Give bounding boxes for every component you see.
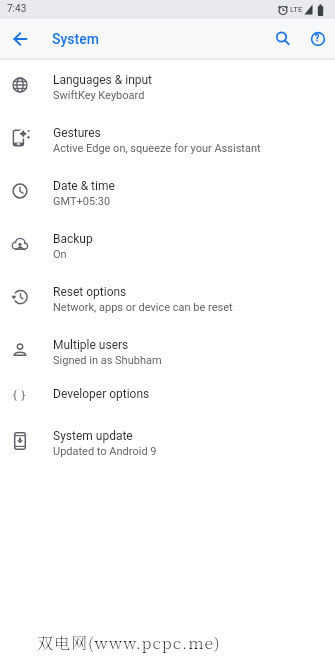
staticText: Developer options (53, 387, 150, 401)
button[interactable]: Date & time (0, 164, 335, 217)
staticText: LTE (290, 5, 303, 14)
staticText: On (53, 248, 67, 261)
staticText: Date & time (53, 179, 115, 193)
staticText: Languages & input (53, 73, 153, 87)
button[interactable]: Multiple users (0, 323, 335, 376)
button[interactable]: Reset options (0, 270, 335, 323)
button[interactable] (265, 19, 301, 58)
staticText: Reset options (53, 285, 127, 299)
staticText: Active Edge on, squeeze for your Assista… (53, 142, 261, 155)
staticText: Backup (53, 232, 93, 246)
button[interactable]: { } (0, 376, 335, 414)
staticText: Multiple users (53, 338, 129, 352)
staticText: Signed in as Shubham (53, 354, 162, 367)
staticText: System update (53, 429, 133, 443)
button[interactable]: Languages & input (0, 58, 335, 111)
button[interactable] (0, 19, 40, 58)
staticText: 7:43 (7, 3, 27, 15)
staticText: Gestures (53, 126, 101, 140)
staticText: 双电网(www.pcpc.me) (37, 631, 221, 654)
button[interactable]: Gestures (0, 111, 335, 164)
button[interactable]: ? (300, 19, 335, 58)
staticText: SwiftKey Keyboard (53, 89, 145, 102)
staticText: System (52, 31, 99, 47)
staticText: Updated to Android 9 (53, 445, 157, 458)
button[interactable]: Backup (0, 217, 335, 270)
staticText: ? (315, 33, 320, 44)
staticText: Network, apps or device can be reset (53, 301, 233, 314)
staticText: GMT+05:30 (53, 195, 111, 208)
button[interactable]: System update (0, 414, 335, 467)
staticText: { } (13, 389, 27, 402)
